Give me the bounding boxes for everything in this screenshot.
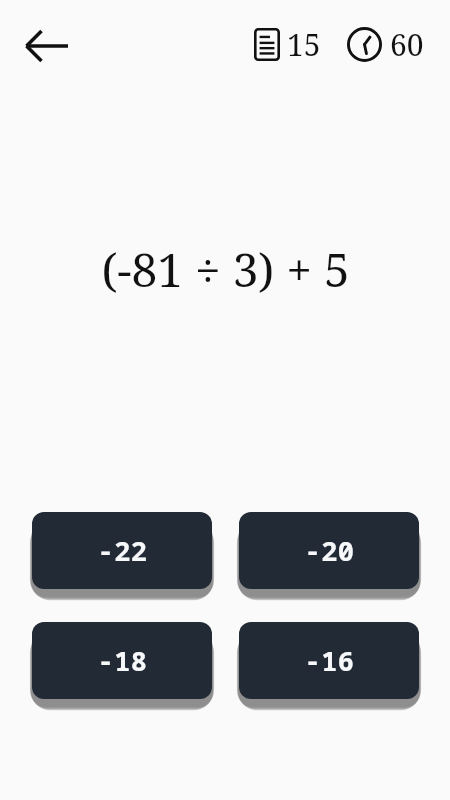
staticText: (-81 ÷ 3) + 5 [101, 238, 350, 301]
staticText: 15 [287, 24, 321, 65]
staticText: -18 [97, 642, 148, 679]
button[interactable]: 15 [252, 22, 323, 67]
button[interactable]: -18 [32, 622, 212, 699]
button[interactable]: 60 [345, 22, 426, 67]
staticText: -20 [304, 532, 355, 569]
staticText: -16 [304, 642, 355, 679]
button[interactable]: -16 [239, 622, 419, 699]
staticText: -22 [97, 532, 148, 569]
staticText: 60 [390, 24, 424, 65]
button[interactable]: -22 [32, 512, 212, 589]
button[interactable]: Back [14, 18, 80, 74]
button[interactable]: -20 [239, 512, 419, 589]
